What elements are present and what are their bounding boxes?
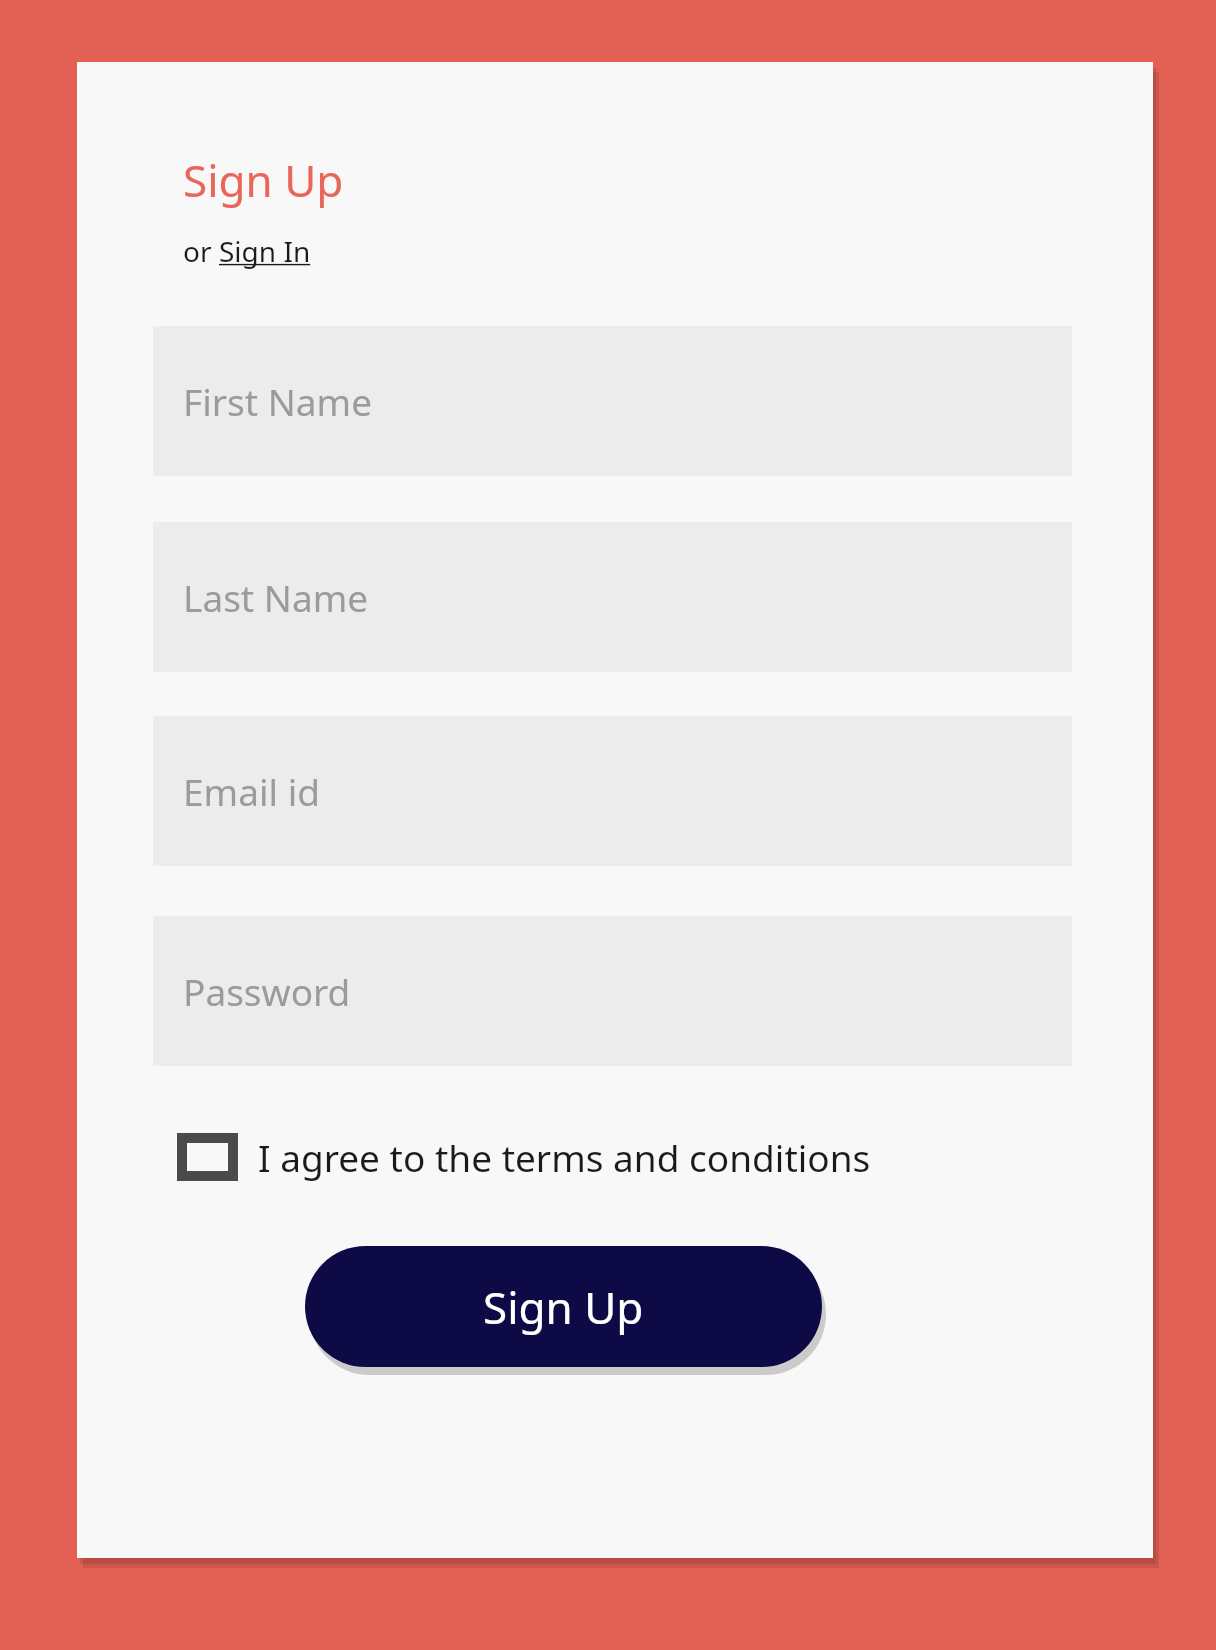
button[interactable]: First Name	[153, 326, 1072, 476]
button[interactable]: Agree to terms checkbox	[177, 1132, 871, 1182]
staticText: or	[183, 232, 219, 270]
button[interactable]: Last Name	[153, 522, 1072, 672]
staticText: First Name	[183, 376, 373, 426]
staticText: Sign Up	[483, 1277, 644, 1337]
staticText: I agree to the terms and conditions	[258, 1132, 871, 1182]
button[interactable]: Password	[153, 916, 1072, 1066]
staticText: Last Name	[183, 572, 369, 622]
staticText: Sign Up	[183, 150, 344, 210]
button[interactable]: Sign In	[219, 232, 311, 270]
staticText: Password	[183, 966, 351, 1016]
staticText: Sign In	[219, 232, 311, 270]
other: Agree to terms checkbox	[177, 1133, 238, 1181]
button[interactable]: Email id	[153, 716, 1072, 866]
button[interactable]: Sign Up	[305, 1246, 822, 1367]
button[interactable]: Sign Up	[183, 150, 344, 210]
staticText: Email id	[183, 766, 320, 816]
